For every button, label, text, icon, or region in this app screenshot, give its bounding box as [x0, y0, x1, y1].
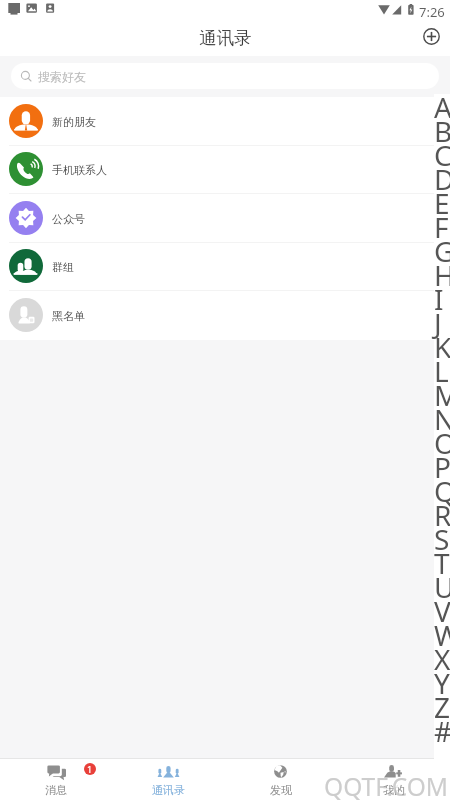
staticText: 通讯录 [152, 783, 185, 797]
staticText: V [434, 592, 450, 630]
staticText: 消息 [45, 783, 67, 797]
staticText: R [434, 496, 450, 534]
staticText: X [434, 640, 450, 678]
staticText: 黑名单 [52, 309, 85, 323]
staticText: U [434, 568, 450, 606]
staticText: QQTF.COM [326, 772, 450, 800]
staticText: 1 [87, 763, 93, 775]
staticText: 发现 [270, 783, 292, 797]
staticText: A [434, 88, 450, 126]
staticText: 搜索好友 [38, 69, 86, 84]
button[interactable]: 发现 [224, 759, 337, 800]
staticText: QQTF.COM [324, 770, 449, 800]
staticText: P [434, 448, 450, 486]
button[interactable]: Alphabet index [434, 94, 450, 759]
staticText: W [434, 616, 450, 654]
staticText: 我的 [383, 783, 405, 797]
staticText: H [434, 256, 450, 294]
staticText: Z [434, 688, 450, 726]
button[interactable]: 黑名单 [0, 291, 450, 340]
staticText: # [434, 712, 450, 750]
staticText: 群组 [52, 260, 74, 274]
button[interactable]: 消息 [0, 759, 112, 800]
button[interactable]: 我的 [337, 759, 450, 800]
button[interactable]: 公众号 [0, 194, 450, 243]
staticText: S [434, 520, 450, 558]
staticText: Y [434, 664, 450, 702]
staticText: T [434, 544, 450, 582]
button[interactable]: 新的朋友 [0, 97, 450, 146]
staticText: K [434, 328, 450, 366]
button[interactable]: 通讯录 [112, 759, 224, 800]
staticText: J [434, 304, 442, 342]
staticText: I [434, 280, 444, 318]
staticText: O [434, 424, 450, 462]
staticText: 7:26 [419, 3, 445, 21]
button[interactable]: 搜索好友 [11, 63, 439, 89]
staticText: Q [434, 472, 450, 510]
staticText: N [434, 400, 450, 438]
staticText: L [434, 352, 449, 390]
staticText: D [434, 160, 450, 198]
button[interactable]: Add friend [416, 21, 446, 51]
staticText: C [434, 136, 450, 174]
staticText: G [434, 232, 450, 270]
button[interactable]: 群组 [0, 243, 450, 291]
staticText: B [434, 112, 450, 150]
staticText: 公众号 [52, 212, 85, 226]
button[interactable]: 手机联系人 [0, 146, 450, 194]
staticText: 手机联系人 [52, 163, 107, 177]
staticText: E [434, 184, 450, 222]
staticText: F [434, 208, 449, 246]
staticText: 新的朋友 [52, 115, 96, 129]
staticText: M [434, 376, 450, 414]
staticText: 通讯录 [199, 27, 252, 49]
